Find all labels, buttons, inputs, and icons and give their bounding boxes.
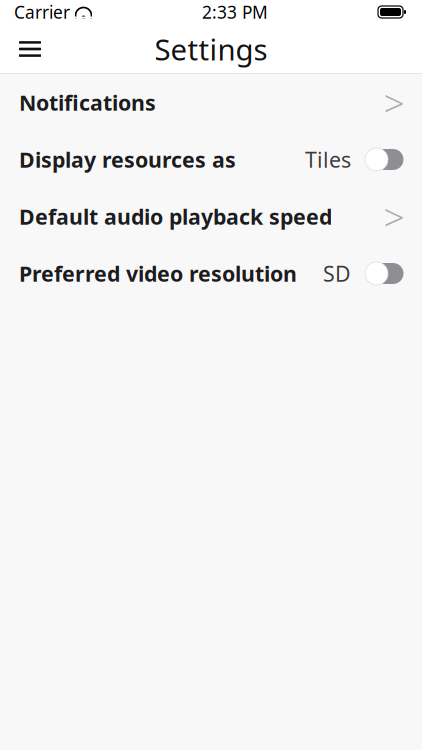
staticText: 2:33 PM bbox=[202, 0, 268, 23]
staticText: Tiles bbox=[305, 145, 351, 174]
staticText: > bbox=[383, 78, 404, 127]
button[interactable]: Display resources as bbox=[0, 131, 422, 188]
staticText: SD bbox=[323, 259, 351, 288]
button[interactable]: Notifications bbox=[0, 74, 422, 131]
staticText: Settings bbox=[154, 29, 267, 68]
button[interactable]: Preferred video resolution bbox=[0, 245, 422, 302]
staticText: Preferred video resolution bbox=[19, 259, 297, 288]
button[interactable]: Menu bbox=[8, 27, 52, 71]
staticText: Default audio playback speed bbox=[19, 202, 332, 231]
staticText: Carrier bbox=[14, 0, 70, 23]
staticText: Notifications bbox=[19, 88, 156, 117]
button[interactable]: Default audio playback speed bbox=[0, 188, 422, 245]
staticText: Display resources as bbox=[19, 145, 236, 174]
staticText: > bbox=[383, 192, 404, 241]
